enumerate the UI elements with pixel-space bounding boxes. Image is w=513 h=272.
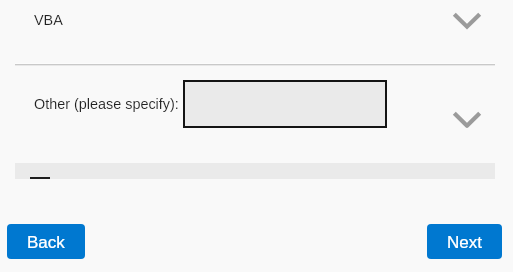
button[interactable]: Back bbox=[7, 224, 85, 259]
button[interactable]: Other, please specify text field bbox=[183, 80, 387, 128]
staticText: Other (please specify): bbox=[34, 96, 179, 112]
button[interactable]: Next question bbox=[15, 163, 495, 179]
staticText: VBA bbox=[34, 12, 63, 28]
staticText: Next bbox=[447, 233, 482, 252]
button[interactable]: Expand VBA options bbox=[445, 5, 489, 35]
button[interactable]: Next bbox=[427, 224, 502, 259]
staticText: Back bbox=[27, 233, 65, 252]
button[interactable]: Expand Other options bbox=[445, 104, 489, 134]
